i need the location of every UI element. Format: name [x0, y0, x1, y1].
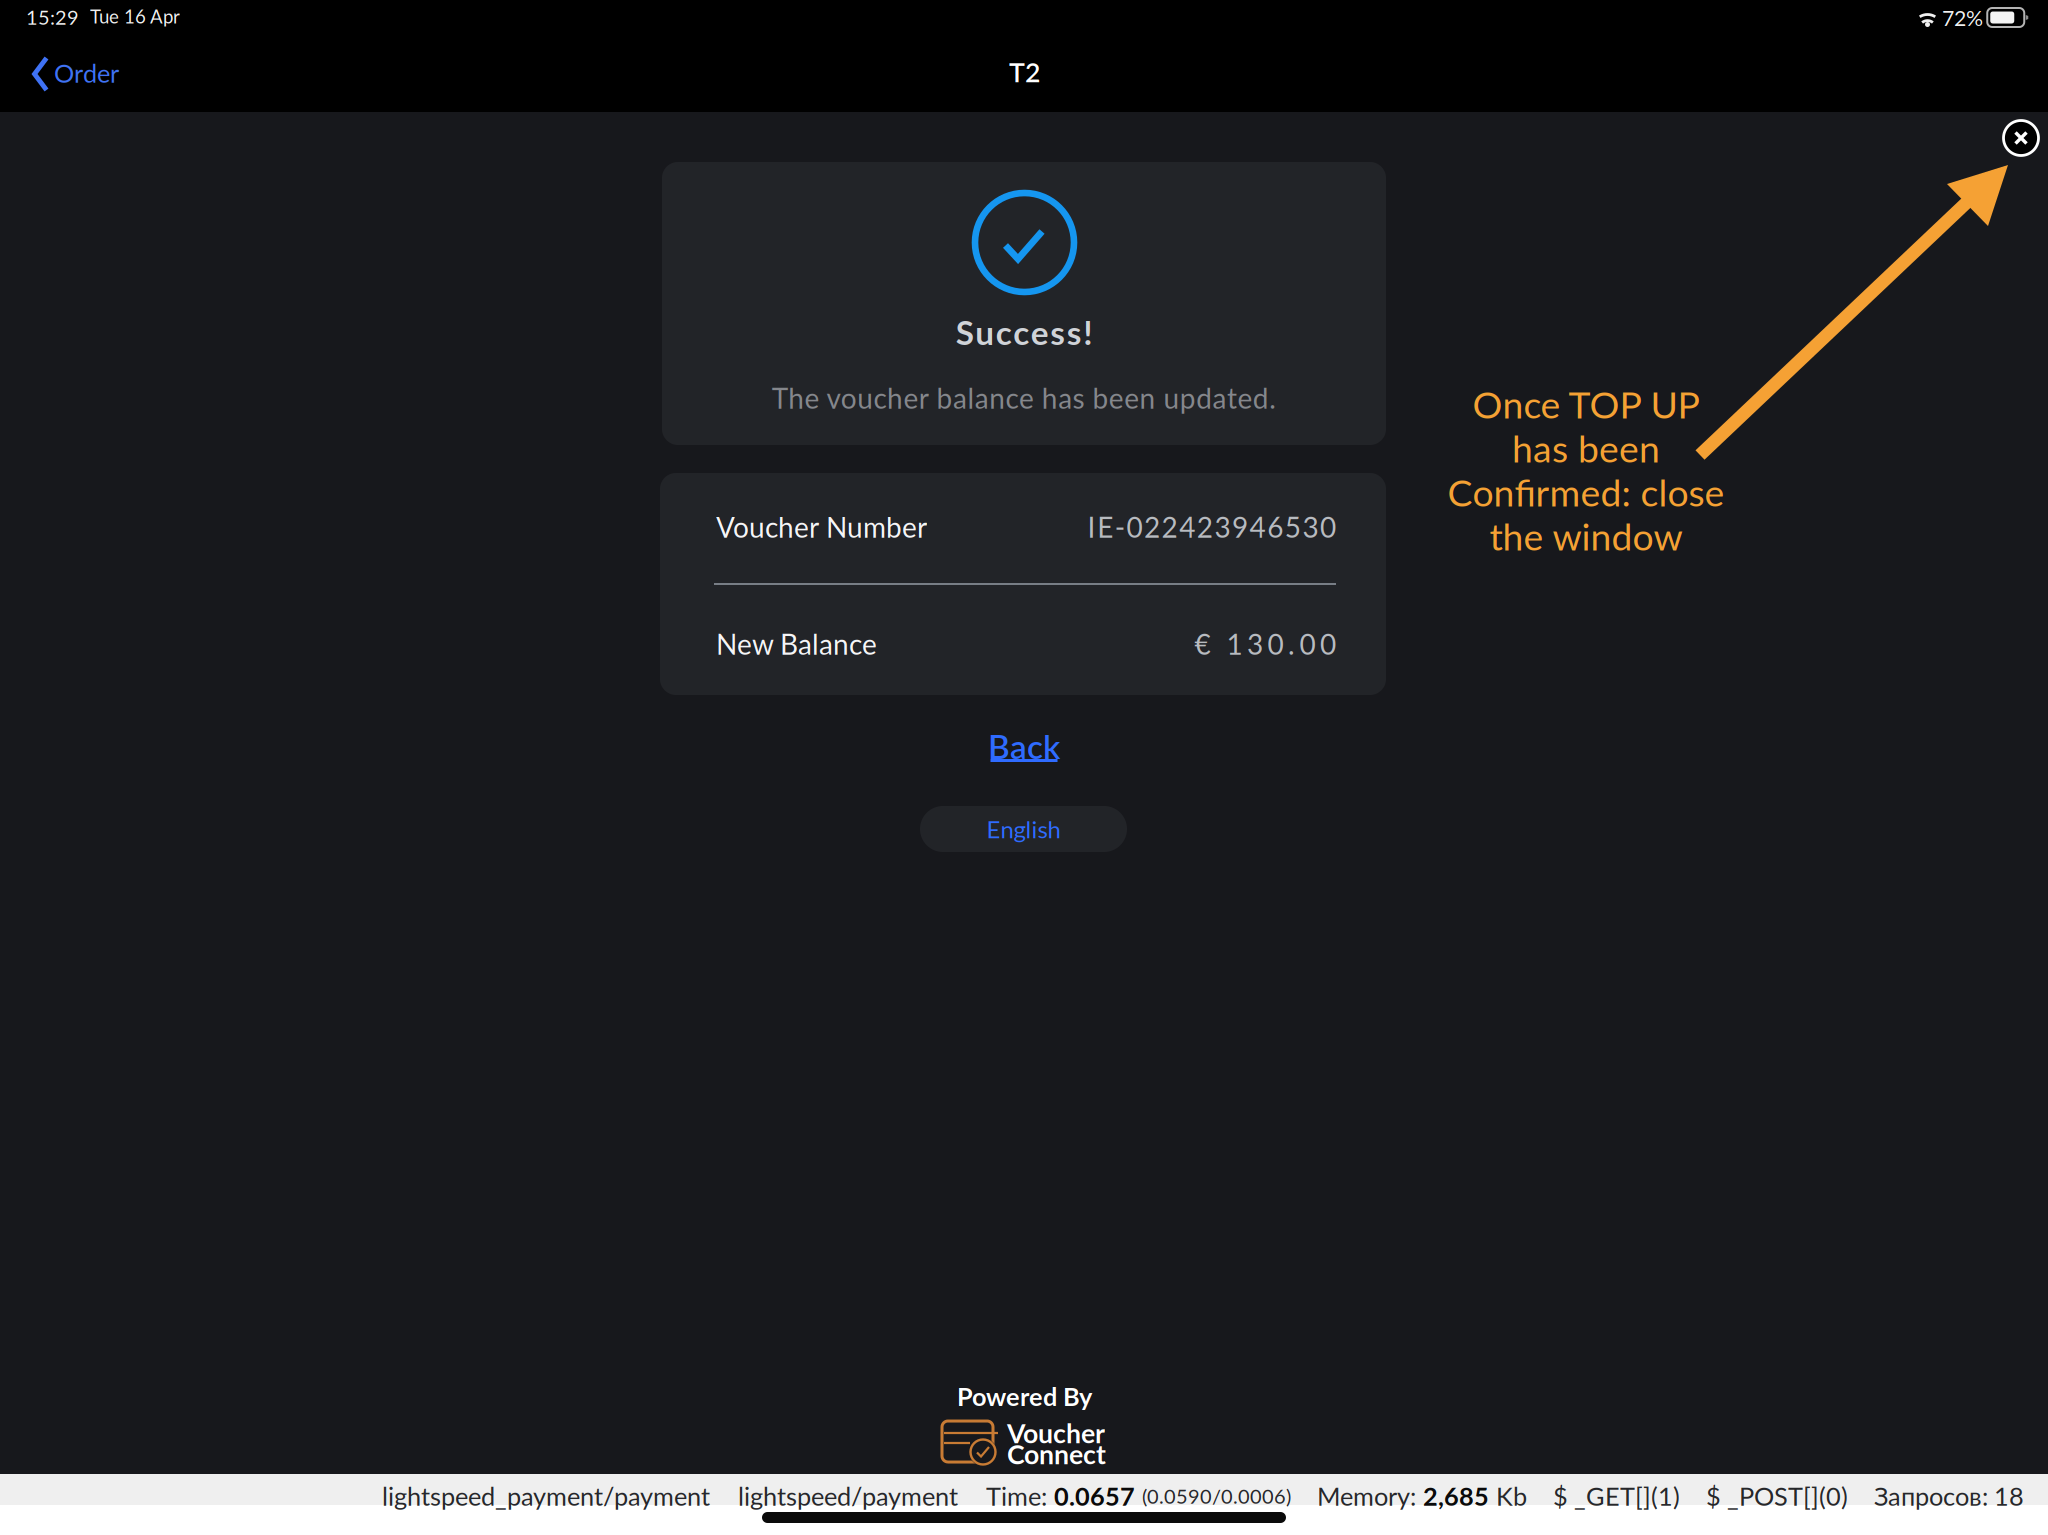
staticText: Back	[988, 726, 1060, 766]
staticText: English	[986, 815, 1060, 843]
button[interactable]: Back	[966, 722, 1082, 774]
staticText: Confirmed: close	[1447, 470, 1724, 514]
button[interactable]: English	[920, 806, 1127, 852]
staticText: The voucher balance has been updated.	[772, 381, 1276, 415]
staticText: Success!	[956, 312, 1092, 352]
staticText: 2,685	[1423, 1481, 1489, 1511]
staticText: Memory:	[1317, 1481, 1416, 1511]
staticText: lightspeed_payment/payment	[382, 1481, 710, 1511]
staticText: (0.0590/0.0006)	[1142, 1484, 1291, 1508]
staticText: has been	[1512, 426, 1660, 470]
staticText: € 130.00	[1194, 627, 1336, 661]
staticText: $ _GET[](1)	[1553, 1481, 1680, 1511]
staticText: T2	[1009, 56, 1040, 88]
staticText: Powered By	[957, 1381, 1092, 1411]
staticText: New Balance	[716, 627, 877, 661]
staticText: Time:	[986, 1481, 1047, 1511]
staticText: Запросов: 18	[1874, 1481, 2024, 1511]
button[interactable]: Close	[1995, 112, 2047, 164]
staticText: Connect	[1007, 1438, 1106, 1470]
staticText: lightspeed/payment	[738, 1481, 958, 1511]
staticText: $ _POST[](0)	[1706, 1481, 1848, 1511]
staticText: 0.0657	[1054, 1481, 1135, 1511]
button[interactable]: Order	[19, 47, 125, 99]
staticText: Kb	[1496, 1481, 1527, 1511]
staticText: Voucher	[1007, 1417, 1105, 1449]
staticText: Once TOP UP	[1472, 382, 1699, 426]
staticText: IE-022423946530	[1088, 510, 1336, 544]
staticText: Tue 16 Apr	[90, 5, 180, 27]
staticText: 72%	[1942, 5, 1983, 31]
staticText: Voucher Number	[716, 510, 927, 544]
staticText: 15:29	[26, 5, 79, 29]
staticText: Order	[54, 58, 119, 88]
staticText: the window	[1489, 514, 1682, 558]
